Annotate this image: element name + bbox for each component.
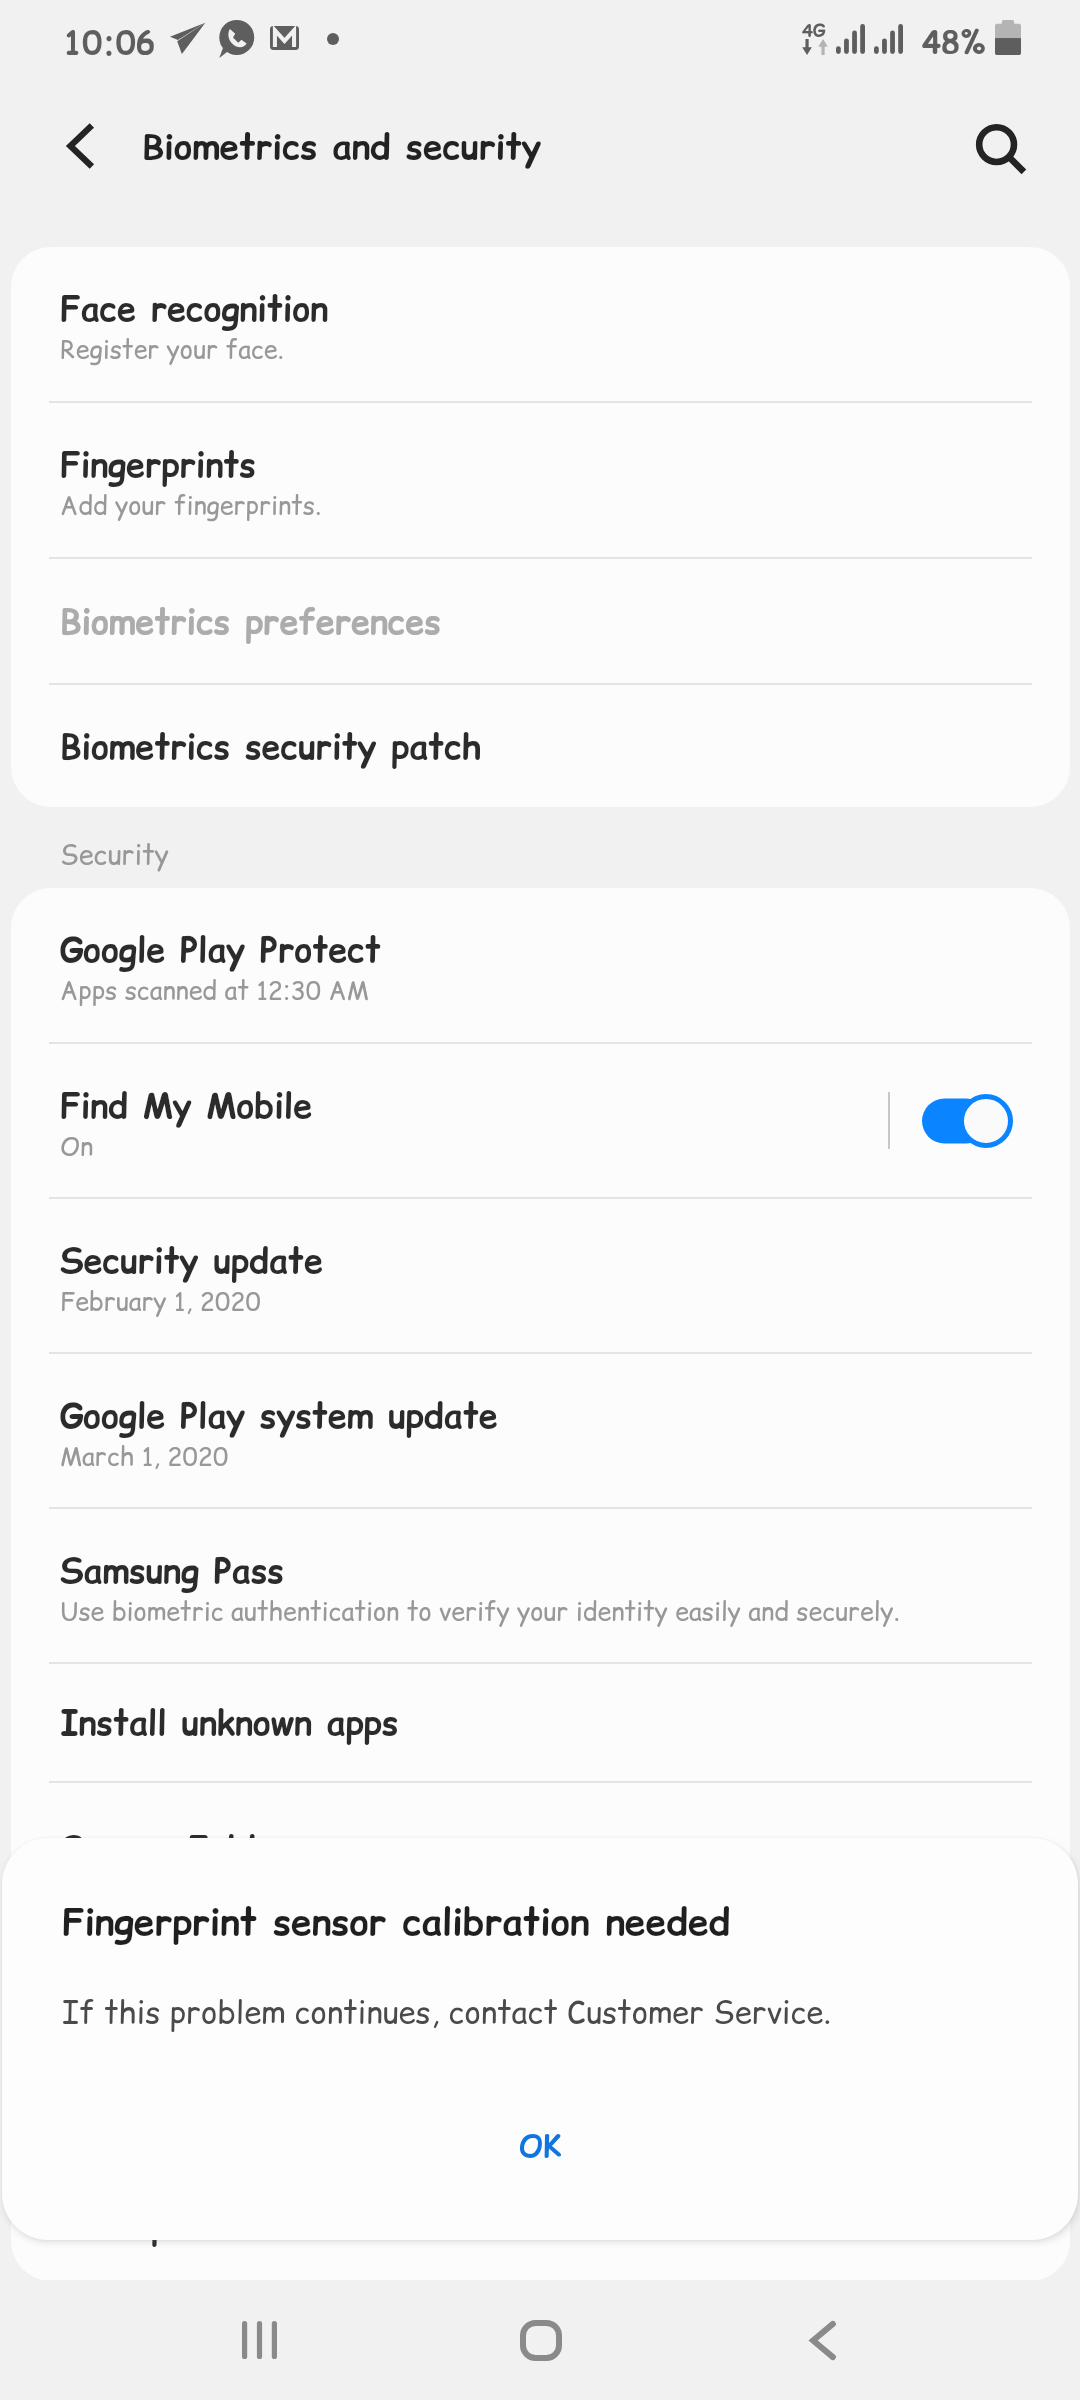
staticText: Apps scanned at 12:30 AM: [60, 973, 369, 1008]
staticText: Set up SIM card lock: [60, 2201, 422, 2248]
button[interactable]: Fingerprints: [11, 403, 1070, 557]
button[interactable]: Find My Mobile: [11, 1044, 1070, 1197]
staticText: Install unknown apps: [60, 1699, 399, 1746]
button[interactable]: Biometrics preferences: [11, 559, 1070, 683]
button[interactable]: Set up SIM card lock: [11, 2168, 1070, 2281]
button[interactable]: Install unknown apps: [11, 1664, 1070, 1781]
staticText: Security: [60, 836, 169, 874]
button[interactable]: Find My Mobile toggle: [922, 1093, 1013, 1149]
staticText: Register your face.: [60, 332, 284, 367]
staticText: On: [60, 1129, 94, 1164]
staticText: 48%: [922, 20, 986, 63]
button[interactable]: Security update: [11, 1199, 1070, 1352]
button[interactable]: Secure Folder: [11, 1783, 1070, 1914]
button[interactable]: Back: [763, 2281, 883, 2399]
staticText: Face recognition: [60, 285, 329, 332]
staticText: Use biometric authentication to verify y…: [60, 1594, 900, 1629]
button[interactable]: Samsung Pass: [11, 1509, 1070, 1662]
staticText: Google Play system update: [60, 1392, 498, 1439]
staticText: 10:06: [63, 20, 155, 65]
button[interactable]: Search: [956, 102, 1044, 190]
staticText: Biometrics preferences: [60, 598, 441, 645]
staticText: OK: [519, 2125, 562, 2167]
staticText: Google Play Protect: [60, 926, 381, 973]
button[interactable]: Recent apps: [199, 2281, 319, 2399]
button[interactable]: OK: [2, 2096, 1078, 2196]
staticText: If this problem continues, contact Custo…: [62, 1990, 832, 2033]
button[interactable]: Face recognition: [11, 247, 1070, 401]
button[interactable]: Navigate up: [36, 102, 124, 190]
staticText: Fingerprint sensor calibration needed: [62, 1896, 731, 1948]
button[interactable]: Google Play system update: [11, 1354, 1070, 1507]
button[interactable]: Encrypt or decrypt SD card: [11, 2042, 1070, 2166]
staticText: Fingerprints: [60, 441, 256, 488]
staticText: Secure Folder: [60, 1825, 291, 1872]
staticText: Secure Wi-Fi: [60, 1955, 284, 2002]
button[interactable]: Secure Wi-Fi: [11, 1916, 1070, 2040]
staticText: February 1, 2020: [60, 1284, 261, 1319]
button[interactable]: Google Play Protect: [11, 888, 1070, 1042]
staticText: Biometrics security patch: [60, 723, 482, 770]
staticText: Security update: [60, 1237, 323, 1284]
button[interactable]: Biometrics security patch: [11, 685, 1070, 807]
staticText: Add your fingerprints.: [60, 488, 322, 523]
staticText: Samsung Pass: [60, 1547, 284, 1594]
staticText: 4G: [802, 18, 826, 43]
staticText: Find My Mobile: [60, 1082, 313, 1129]
button[interactable]: Home: [481, 2281, 601, 2399]
staticText: Biometrics and security: [142, 122, 542, 171]
staticText: March 1, 2020: [60, 1439, 229, 1474]
